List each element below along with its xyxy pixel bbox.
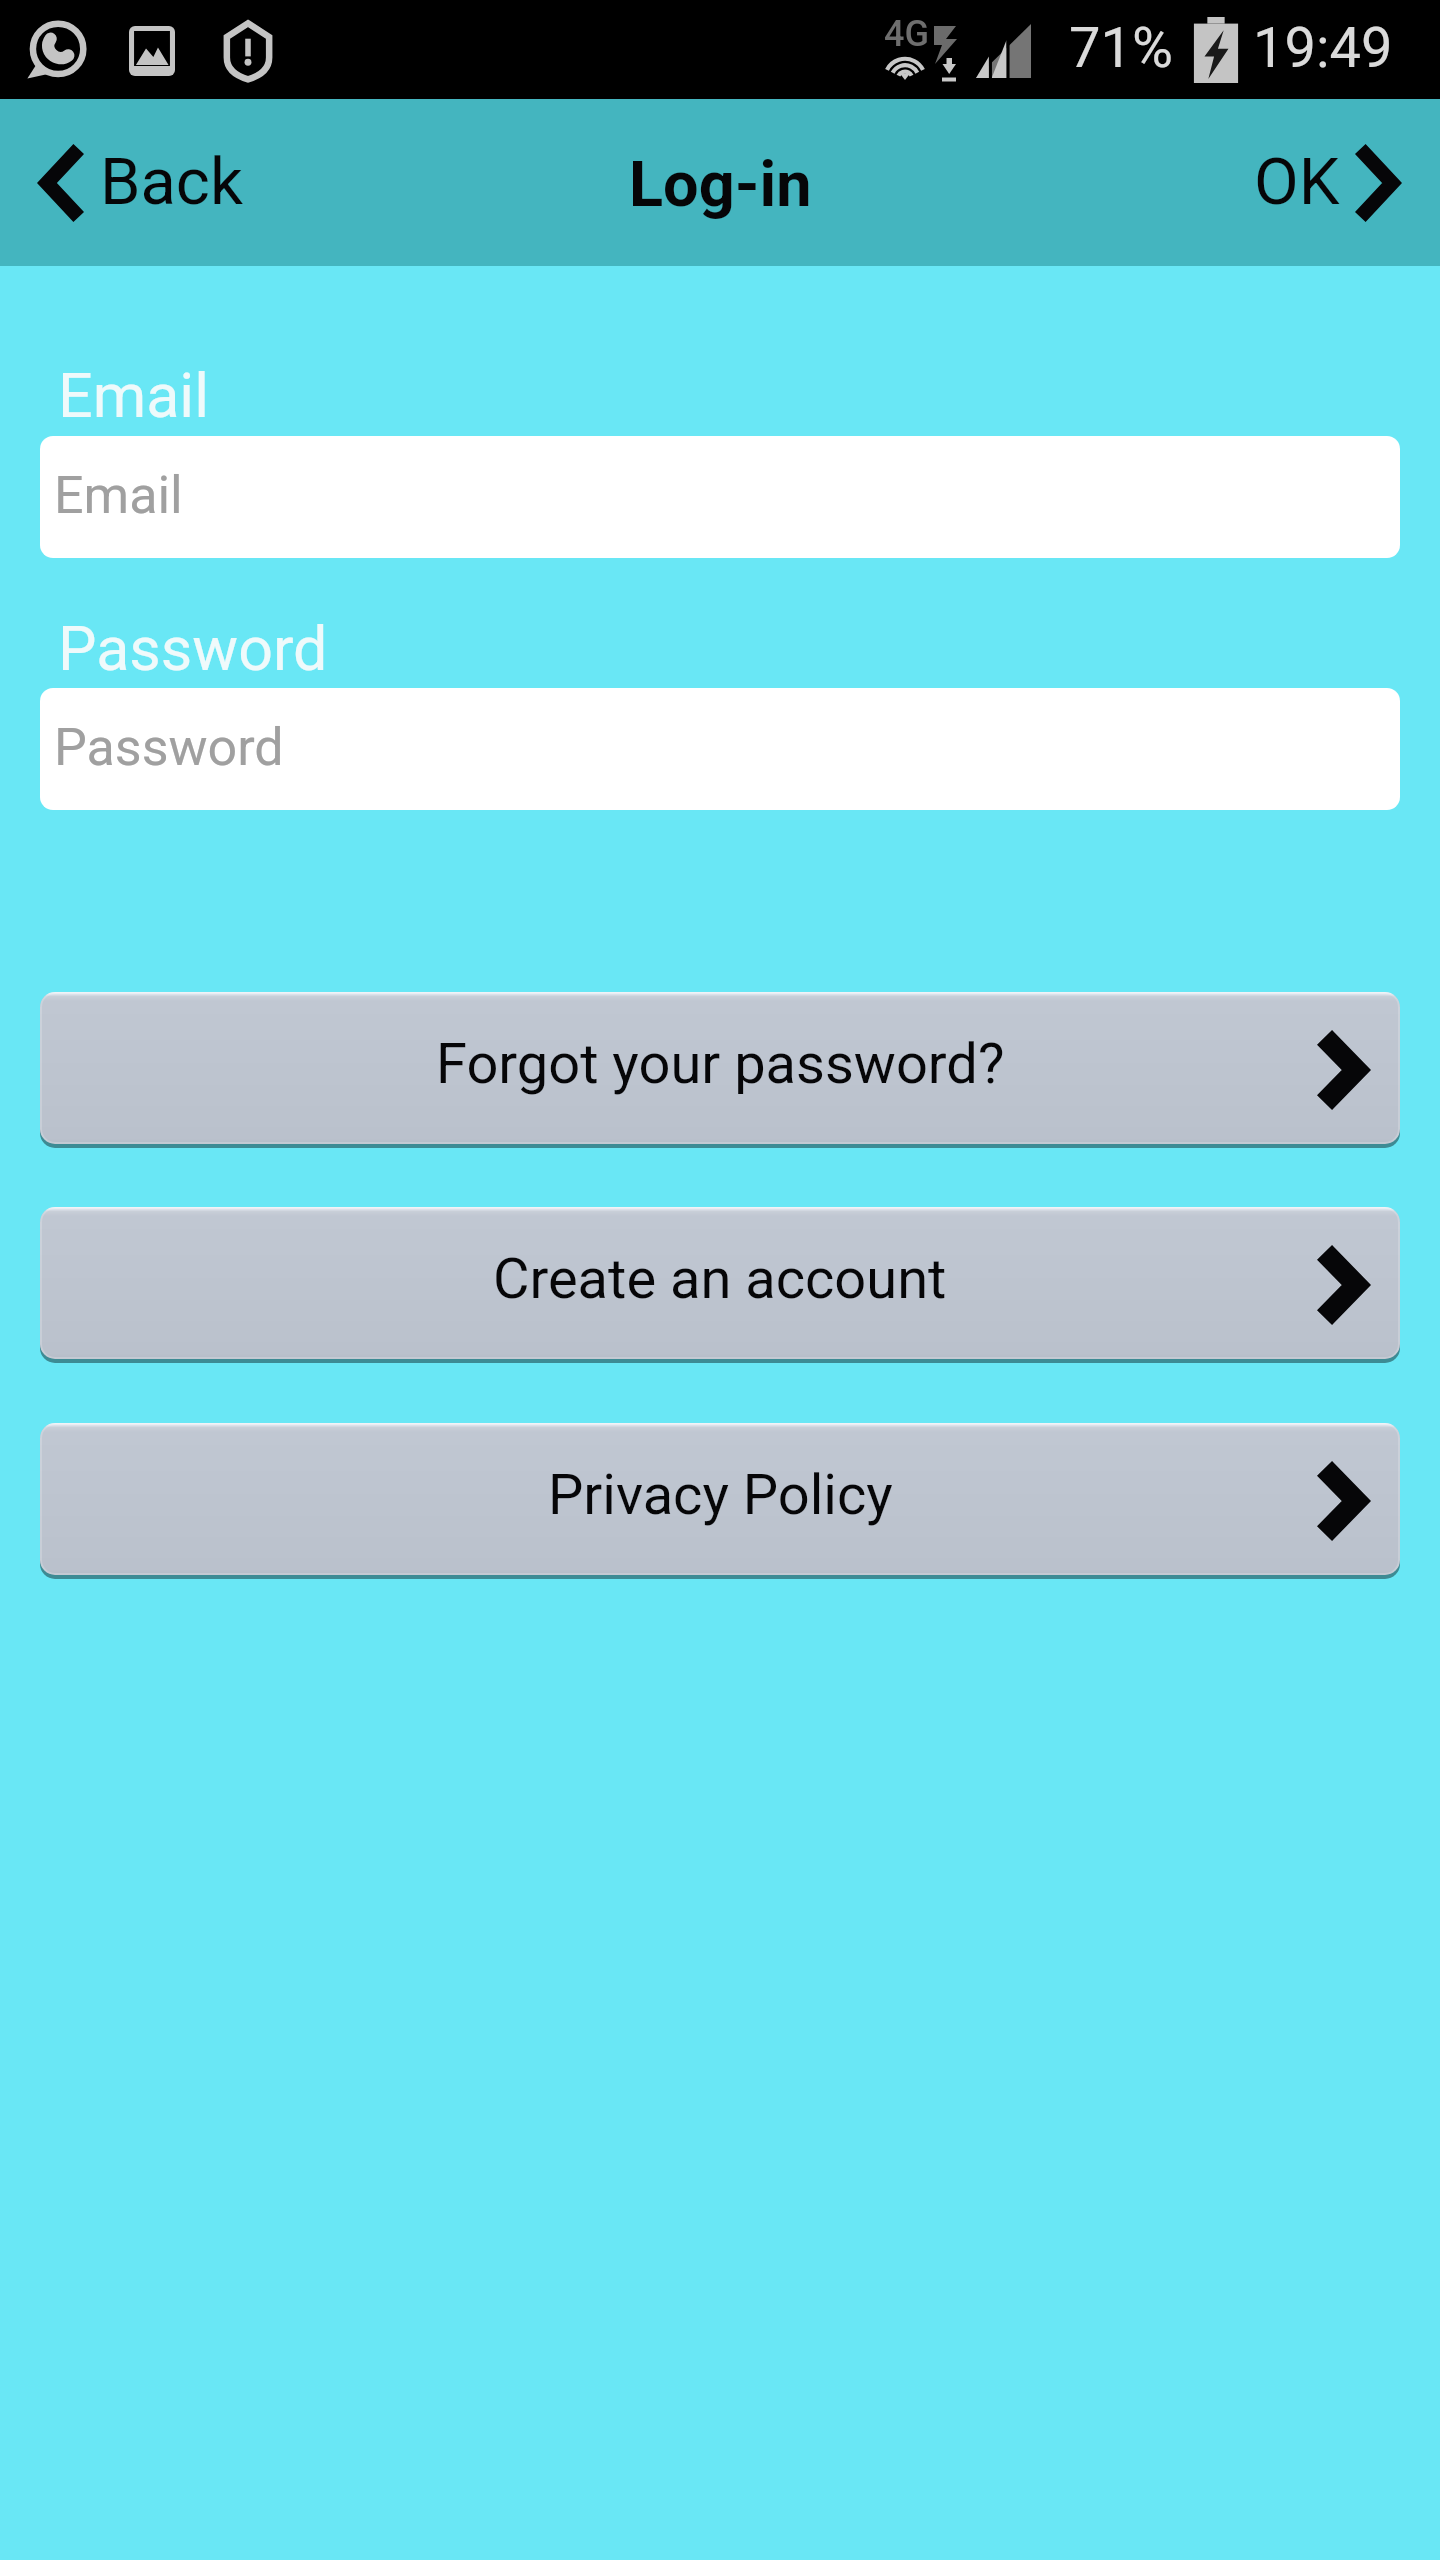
staticText: 4G	[884, 13, 929, 55]
staticText: Log-in	[629, 148, 812, 222]
button[interactable]: Password	[40, 688, 1400, 810]
staticText: Privacy Policy	[548, 1462, 893, 1528]
staticText: Forgot your password?	[436, 1031, 1005, 1097]
button[interactable]: Email	[40, 436, 1400, 558]
button[interactable]: OK	[1214, 108, 1440, 258]
staticText: Email	[58, 360, 210, 431]
staticText: Password	[58, 613, 328, 684]
staticText: Create an account	[493, 1246, 947, 1312]
staticText: Email	[54, 465, 183, 526]
staticText: 19:49	[1253, 15, 1393, 81]
staticText: OK	[1254, 144, 1340, 220]
button[interactable]: Back	[0, 108, 283, 258]
staticText: Password	[54, 717, 284, 778]
button[interactable]: Create an account	[40, 1207, 1400, 1359]
button[interactable]: Privacy Policy	[40, 1423, 1400, 1575]
staticText: 71%	[1069, 15, 1173, 81]
button[interactable]: Forgot your password?	[40, 992, 1400, 1144]
staticText: Back	[100, 144, 243, 220]
